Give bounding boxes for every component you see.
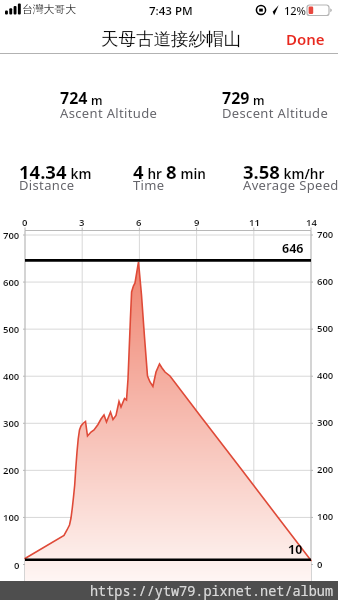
staticText: Time <box>133 176 165 194</box>
staticText: 646 <box>282 240 304 256</box>
staticText: 600 <box>317 275 334 288</box>
staticText: 14.34 <box>19 159 67 184</box>
staticText: 700 <box>317 228 334 241</box>
staticText: m <box>88 92 103 108</box>
staticText: 700 <box>3 229 20 242</box>
staticText: 台灣大哥大 <box>22 3 76 17</box>
staticText: 6 <box>136 216 142 229</box>
staticText: 0 <box>22 216 28 229</box>
staticText: 14 <box>306 216 317 229</box>
staticText: hr <box>144 165 166 183</box>
staticText: Done <box>286 29 325 49</box>
staticText: 500 <box>317 322 334 335</box>
staticText: https://ytw79.pixnet.net/album <box>90 582 333 600</box>
staticText: 400 <box>3 370 20 383</box>
staticText: 10 <box>288 541 303 557</box>
staticText: Average Speed <box>243 176 338 194</box>
staticText: 3.58 <box>243 159 280 184</box>
staticText: 9 <box>194 216 200 229</box>
staticText: m <box>250 92 265 108</box>
staticText: 200 <box>317 463 334 476</box>
button[interactable]: Done <box>265 28 325 50</box>
staticText: km/hr <box>280 165 325 183</box>
staticText: 0 <box>14 559 20 572</box>
staticText: 3 <box>79 216 85 229</box>
staticText: 8 <box>166 159 177 184</box>
staticText: 11 <box>249 216 260 229</box>
staticText: Distance <box>19 176 75 194</box>
staticText: 200 <box>3 464 20 477</box>
staticText: km <box>67 165 92 183</box>
staticText: min <box>177 165 206 183</box>
staticText: Ascent Altitude <box>60 104 158 122</box>
staticText: 100 <box>3 511 20 524</box>
staticText: 729 <box>222 87 250 109</box>
staticText: 600 <box>3 276 20 289</box>
staticText: 724 <box>60 87 88 109</box>
staticText: 300 <box>317 416 334 429</box>
staticText: Descent Altitude <box>222 104 329 122</box>
staticText: 天母古道接紗帽山 <box>101 28 241 50</box>
staticText: 100 <box>317 510 334 523</box>
staticText: 12% <box>284 3 306 18</box>
staticText: 7:43 PM <box>149 3 193 17</box>
staticText: 4 <box>133 159 144 184</box>
staticText: 400 <box>317 369 334 382</box>
staticText: 300 <box>3 417 20 430</box>
staticText: 500 <box>3 323 20 336</box>
staticText: 0 <box>317 558 323 571</box>
